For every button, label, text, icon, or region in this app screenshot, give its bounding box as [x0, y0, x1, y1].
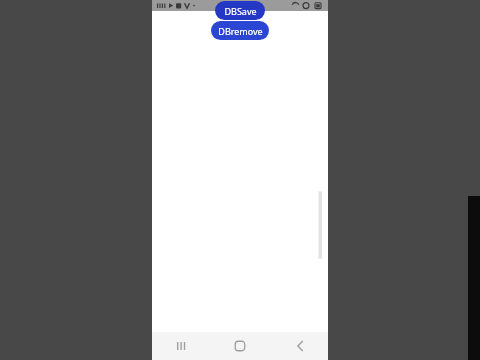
button[interactable]: DBSave — [215, 1, 265, 20]
button[interactable]: Back — [269, 332, 328, 360]
staticText: DBSave — [224, 5, 257, 17]
staticText: DBremove — [218, 25, 263, 37]
button[interactable]: Home — [210, 332, 269, 360]
button[interactable]: DBremove — [211, 21, 269, 40]
button[interactable]: Recent apps — [152, 332, 210, 360]
